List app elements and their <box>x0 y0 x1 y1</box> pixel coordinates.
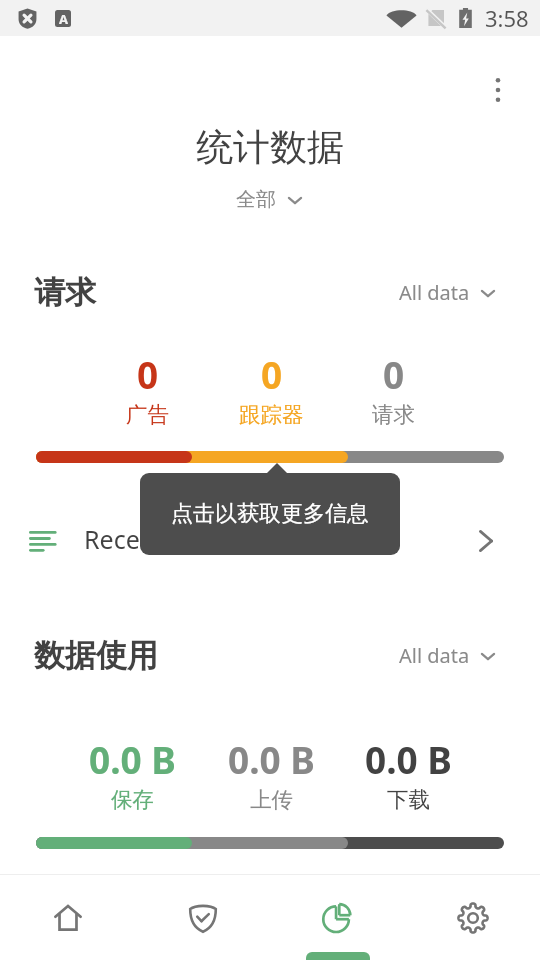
staticText: 0 <box>383 349 405 399</box>
button[interactable]: All data <box>393 638 503 673</box>
button[interactable]: Settings <box>405 875 540 960</box>
staticText: 统计数据 <box>0 124 540 171</box>
button[interactable]: 0 <box>323 349 463 428</box>
button[interactable]: 全部 <box>228 183 312 216</box>
button[interactable]: Protection <box>135 875 270 960</box>
button[interactable]: 0.0 B <box>201 734 341 813</box>
staticText: 跟踪器 <box>239 401 304 428</box>
button[interactable]: 点击以获取更多信息 <box>140 473 400 555</box>
button[interactable]: More options <box>478 70 518 110</box>
button[interactable]: 0 <box>201 349 341 428</box>
staticText: 3:58 <box>485 3 529 33</box>
staticText: All data <box>399 279 470 306</box>
button[interactable]: Home <box>0 875 135 960</box>
staticText: 下载 <box>387 786 430 813</box>
staticText: All data <box>399 642 470 669</box>
staticText: 0.0 B <box>365 734 452 784</box>
staticText: 全部 <box>236 187 276 212</box>
staticText: 广告 <box>126 401 169 428</box>
staticText: 0.0 B <box>228 734 315 784</box>
staticText: 点击以获取更多信息 <box>171 500 369 528</box>
button[interactable]: Statistics <box>270 875 405 960</box>
staticText: 请求 <box>372 401 415 428</box>
staticText: 0.0 B <box>89 734 176 784</box>
button[interactable]: 0.0 B <box>338 734 478 813</box>
button[interactable]: All data <box>393 275 503 310</box>
staticText: 保存 <box>111 786 154 813</box>
staticText: Recent activity <box>84 522 254 556</box>
staticText: 数据使用 <box>34 636 158 675</box>
staticText: 请求 <box>34 273 96 312</box>
staticText: 0 <box>261 349 283 399</box>
staticText: A <box>59 10 68 27</box>
staticText: 上传 <box>250 786 293 813</box>
button[interactable]: 0 <box>77 349 217 428</box>
button[interactable]: Recent activity <box>0 508 540 570</box>
button[interactable]: 0.0 B <box>62 734 202 813</box>
staticText: 0 <box>137 349 159 399</box>
